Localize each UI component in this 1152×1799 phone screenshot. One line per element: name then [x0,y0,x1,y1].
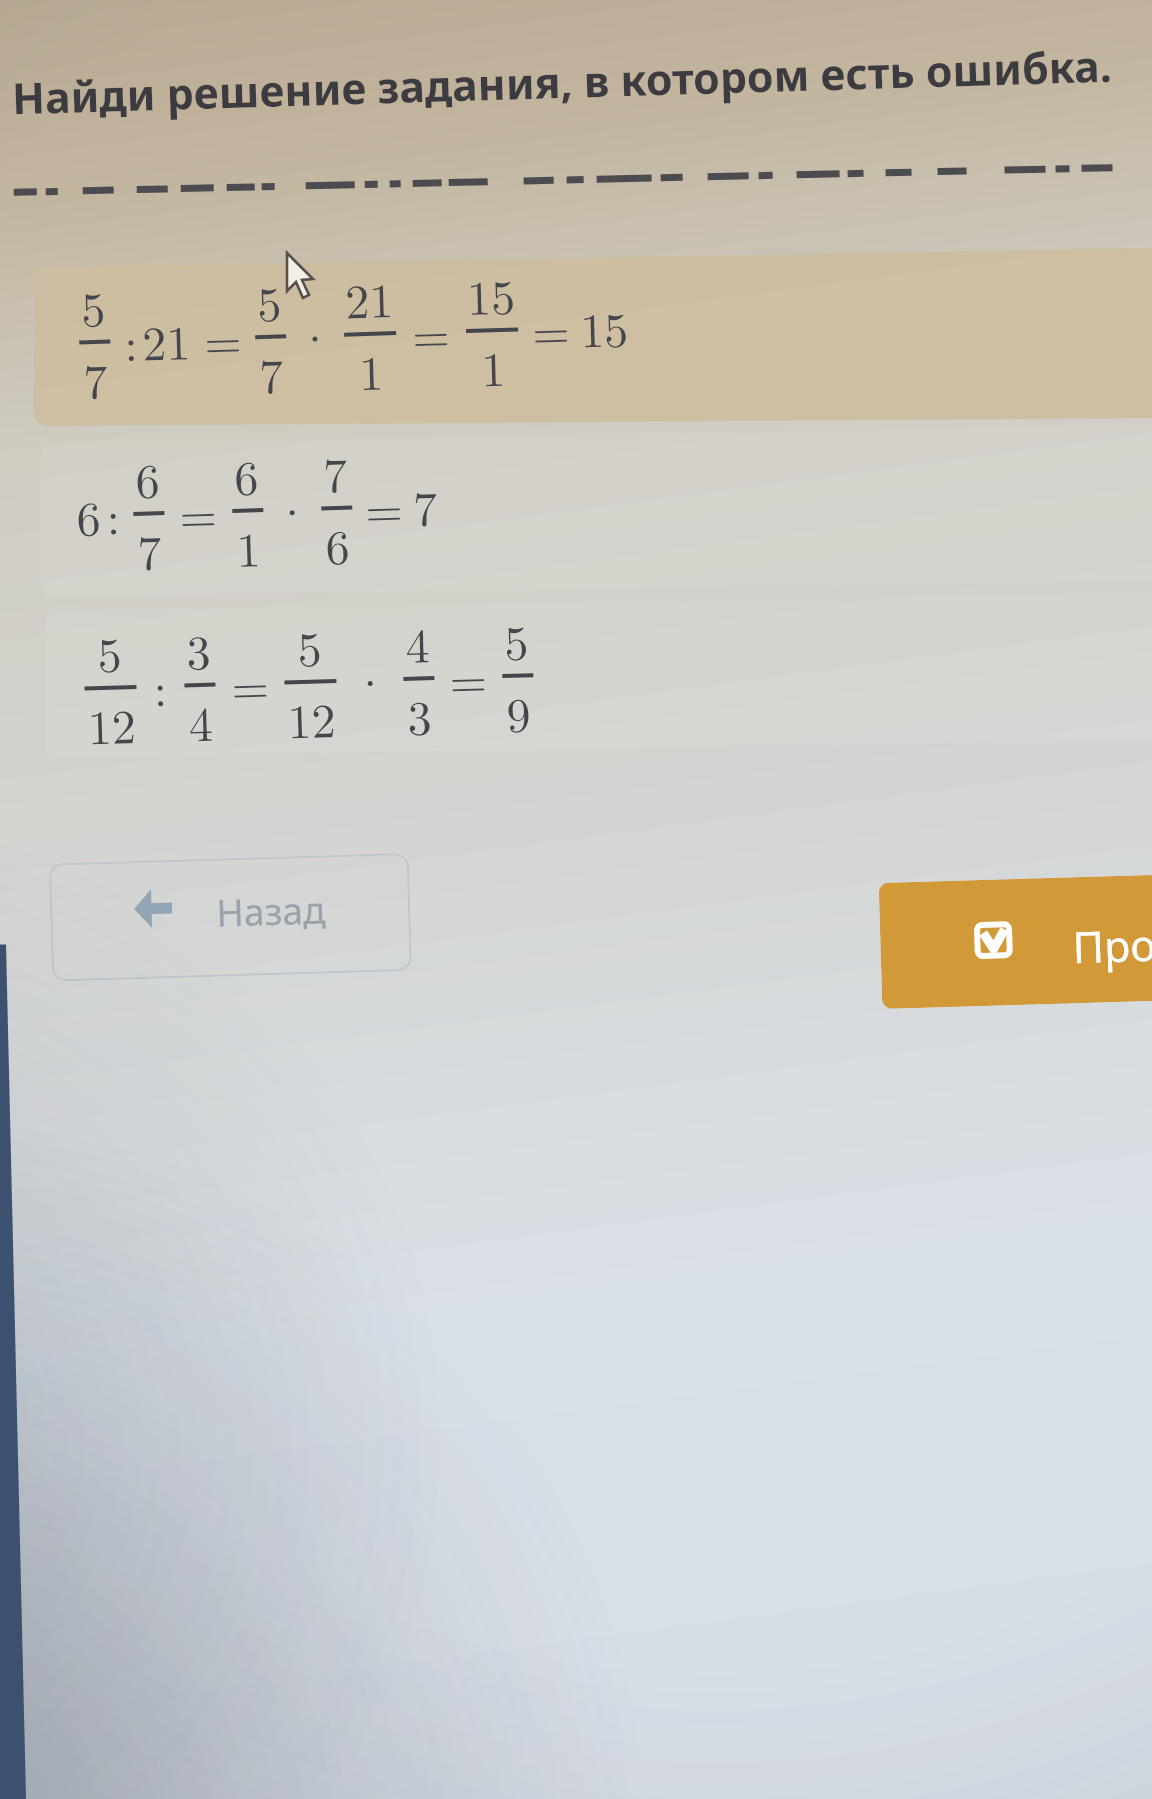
staticText: 6 [324,510,351,578]
staticText: Найди решение задания, в котором есть ош… [11,36,1113,126]
staticText: 1 [480,332,507,401]
staticText: 21 [344,263,395,332]
button[interactable]: 5 [37,583,1152,763]
staticText: = [230,649,270,718]
staticText: = [411,297,451,367]
staticText: = [531,294,571,363]
staticText: 5 [96,617,123,686]
staticText: = [178,477,218,547]
staticText: 3 [406,680,433,749]
staticText: : [152,652,168,720]
staticText: = [203,304,243,373]
staticText: 15 [579,292,630,362]
staticText: 7 [322,438,349,506]
staticText: 15 [466,259,517,329]
staticText: 4 [404,608,431,677]
button[interactable]: 6 [27,404,1152,595]
staticText: · [350,645,390,715]
staticText: · [295,301,335,370]
staticText: : [105,480,121,549]
staticText: 7 [258,338,285,407]
staticText: 9 [505,677,532,746]
staticText: 1 [235,512,262,581]
staticText: Про [1072,915,1152,976]
button[interactable]: Назад [49,853,412,981]
staticText: 7 [82,344,109,412]
staticText: 5 [296,611,323,680]
staticText: · [272,475,312,544]
staticText: 6 [233,440,260,509]
staticText: 12 [286,683,337,752]
staticText: 5 [256,266,283,335]
staticText: 5 [503,605,530,674]
staticText: = [448,642,488,712]
button[interactable]: Про [879,874,1152,1009]
staticText: 5 [80,272,107,340]
staticText: = [364,472,404,541]
staticText: : [123,307,139,375]
staticText: 6 [75,481,102,550]
staticText: 6 [134,443,161,512]
staticText: 3 [185,615,212,683]
staticText: Назад [215,883,327,937]
button[interactable]: 5 [17,226,1152,429]
staticText: 12 [87,689,138,758]
staticText: 7 [412,471,439,540]
staticText: 4 [187,687,214,755]
staticText: 1 [358,335,385,404]
staticText: 21 [141,305,192,375]
staticText: 7 [136,515,163,584]
